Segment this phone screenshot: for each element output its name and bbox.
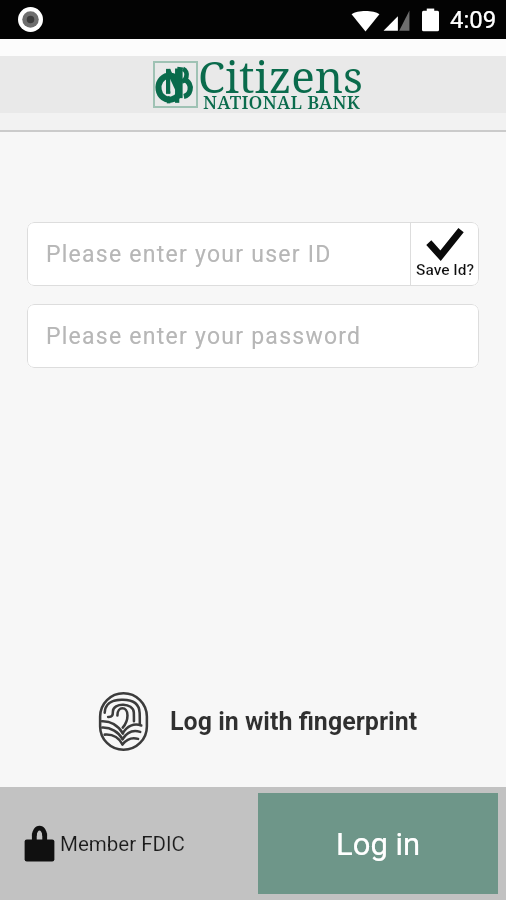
staticText: Please enter your user ID [46, 241, 332, 268]
button[interactable]: Log in with fingerprint [86, 691, 426, 752]
staticText: Member FDIC [60, 832, 185, 856]
button[interactable]: Save Id [411, 222, 479, 286]
button[interactable]: Member FDIC [24, 825, 185, 863]
staticText: 4:09 [450, 6, 497, 34]
staticText: Log in [336, 826, 421, 862]
staticText: Log in with fingerprint [170, 707, 418, 736]
staticText: NATIONAL BANK [203, 90, 361, 115]
staticText: Save Id? [416, 261, 475, 279]
staticText: Please enter your password [46, 323, 362, 350]
button[interactable]: Log in [258, 793, 498, 894]
staticText: Citizens [198, 46, 363, 106]
button[interactable]: Please enter your user ID [27, 222, 479, 286]
button[interactable]: Please enter your password [27, 304, 479, 368]
